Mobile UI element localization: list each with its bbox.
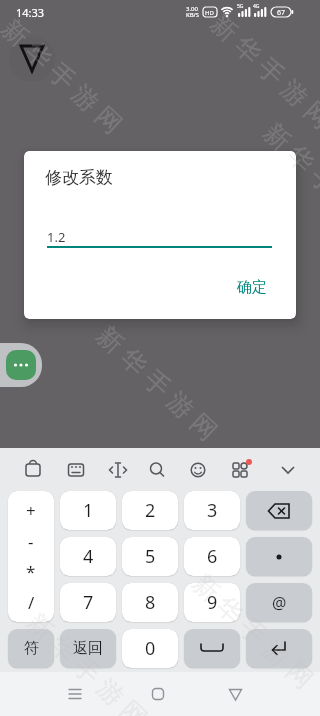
- button[interactable]: 2: [122, 491, 178, 530]
- staticText: 修改系数: [45, 167, 113, 188]
- button[interactable]: 5: [122, 537, 178, 576]
- button[interactable]: 7: [60, 583, 116, 622]
- staticText: 7: [83, 590, 94, 615]
- button[interactable]: @: [246, 583, 312, 622]
- staticText: 5: [145, 544, 156, 569]
- staticText: 6: [207, 544, 218, 569]
- staticText: 确定: [237, 278, 267, 297]
- staticText: 5G: [237, 3, 244, 10]
- staticText: 4: [83, 544, 94, 569]
- button[interactable]: [0, 343, 42, 387]
- staticText: 67: [277, 8, 286, 18]
- button[interactable]: [18, 453, 50, 485]
- button[interactable]: 1: [60, 491, 116, 530]
- button[interactable]: [142, 453, 174, 485]
- staticText: 返回: [73, 639, 103, 658]
- button[interactable]: [61, 453, 93, 485]
- button[interactable]: [246, 629, 312, 668]
- staticText: 14:33: [16, 5, 45, 20]
- button[interactable]: +: [8, 491, 54, 622]
- staticText: 3.00: [186, 5, 198, 13]
- button[interactable]: [184, 629, 240, 668]
- staticText: 符: [24, 639, 39, 658]
- staticText: 新华手游网: [202, 6, 320, 137]
- staticText: 8: [145, 590, 156, 615]
- staticText: 9: [207, 590, 218, 615]
- button[interactable]: 8: [122, 583, 178, 622]
- button[interactable]: 确定: [222, 269, 282, 305]
- staticText: 新华手游网: [88, 318, 226, 449]
- staticText: 新华手游网: [255, 115, 320, 246]
- button[interactable]: [273, 453, 305, 485]
- button[interactable]: [138, 678, 178, 710]
- staticText: 新华手游网: [0, 11, 131, 142]
- staticText: 0: [145, 636, 156, 661]
- staticText: +: [26, 499, 36, 522]
- button[interactable]: 4: [60, 537, 116, 576]
- button[interactable]: [215, 678, 255, 710]
- button[interactable]: 9: [184, 583, 240, 622]
- staticText: 4G: [253, 3, 260, 10]
- button[interactable]: 返回: [60, 629, 116, 668]
- button[interactable]: 0: [122, 629, 178, 668]
- staticText: *: [26, 560, 36, 583]
- staticText: 3: [207, 498, 218, 523]
- staticText: @: [272, 592, 287, 614]
- staticText: -: [28, 530, 34, 553]
- button[interactable]: 符: [8, 629, 54, 668]
- button[interactable]: [225, 453, 257, 485]
- staticText: 新华手游网: [184, 566, 320, 697]
- staticText: KB/S: [186, 11, 200, 19]
- button[interactable]: 6: [184, 537, 240, 576]
- button[interactable]: 3: [184, 491, 240, 530]
- staticText: 新华手游网: [18, 605, 156, 716]
- button[interactable]: [246, 537, 312, 576]
- button[interactable]: [246, 491, 312, 530]
- staticText: 1: [83, 498, 94, 523]
- staticText: /: [28, 591, 35, 614]
- button[interactable]: [55, 678, 95, 710]
- staticText: 2: [145, 498, 156, 523]
- staticText: HD: [205, 9, 214, 17]
- staticText: 1.2: [47, 228, 66, 246]
- button[interactable]: [183, 453, 215, 485]
- button[interactable]: [103, 453, 135, 485]
